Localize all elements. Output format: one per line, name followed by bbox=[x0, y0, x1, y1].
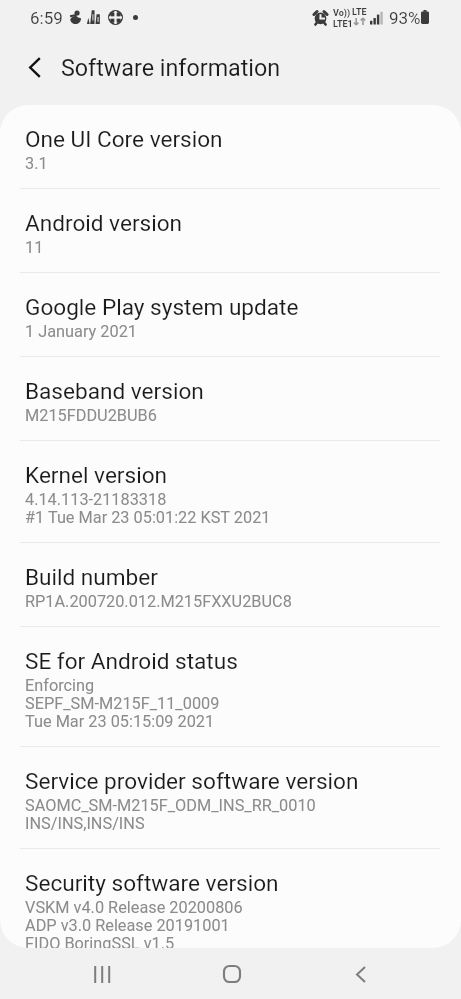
staticText: Security software version bbox=[25, 870, 279, 896]
button[interactable]: Security software version bbox=[0, 849, 461, 948]
staticText: M215FDDU2BUB6 bbox=[25, 406, 157, 425]
staticText: 6:59 bbox=[30, 8, 63, 28]
staticText: Enforcing SEPF_SM-M215F_11_0009 Tue Mar … bbox=[25, 676, 220, 731]
staticText: Google Play system update bbox=[25, 294, 299, 320]
staticText: LTE1 bbox=[333, 19, 353, 30]
staticText: Vo)) bbox=[333, 8, 351, 19]
staticText: 3.1 bbox=[25, 154, 48, 173]
staticText: Service provider software version bbox=[25, 768, 359, 794]
staticText: Baseband version bbox=[25, 378, 204, 404]
button[interactable]: Baseband version bbox=[0, 357, 461, 440]
staticText: RP1A.200720.012.M215FXXU2BUC8 bbox=[25, 592, 292, 611]
staticText: SAOMC_SM-M215F_ODM_INS_RR_0010 INS/INS,I… bbox=[25, 796, 316, 833]
button[interactable]: One UI Core version bbox=[0, 105, 461, 188]
button[interactable]: Android version bbox=[0, 189, 461, 272]
button[interactable]: Google Play system update bbox=[0, 273, 461, 356]
button[interactable]: SE for Android status bbox=[0, 627, 461, 746]
staticText: Software information bbox=[61, 54, 281, 81]
staticText: One UI Core version bbox=[25, 126, 223, 152]
staticText: Kernel version bbox=[25, 462, 168, 488]
staticText: 1 January 2021 bbox=[25, 322, 137, 341]
staticText: 11 bbox=[25, 238, 44, 257]
staticText: 93% bbox=[389, 8, 421, 28]
staticText: Build number bbox=[25, 564, 158, 590]
button[interactable]: Service provider software version bbox=[0, 747, 461, 848]
button[interactable]: Home bbox=[209, 954, 254, 994]
button[interactable]: Navigate up bbox=[13, 45, 57, 89]
staticText: Android version bbox=[25, 210, 183, 236]
button[interactable]: Build number bbox=[0, 543, 461, 626]
staticText: SE for Android status bbox=[25, 648, 238, 674]
staticText: LTE bbox=[352, 7, 367, 18]
button[interactable]: Back bbox=[338, 954, 383, 994]
staticText: VSKM v4.0 Release 20200806 ADP v3.0 Rele… bbox=[25, 898, 243, 948]
button[interactable]: Recent apps bbox=[80, 954, 125, 994]
button[interactable]: Kernel version bbox=[0, 441, 461, 542]
staticText: 4.14.113-21183318 #1 Tue Mar 23 05:01:22… bbox=[25, 490, 271, 527]
